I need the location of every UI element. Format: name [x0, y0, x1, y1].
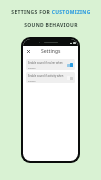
staticText: Settings [41, 48, 61, 55]
button[interactable]: Enable sound if no/zer when new activity [26, 59, 75, 70]
button[interactable]: Enable sound if activity when new activi… [26, 72, 75, 83]
button[interactable]: Close settings [25, 48, 32, 55]
staticText: Enable sound if activity when new activi… [28, 74, 65, 78]
staticText: SOUND BEHAVIOUR [24, 22, 78, 29]
button[interactable]: Toggle on [67, 63, 73, 67]
button[interactable]: Toggle off [67, 76, 73, 80]
staticText: SETTINGS FOR CUSTOMIZING [11, 9, 91, 16]
staticText: shown [28, 66, 36, 69]
staticText: Enable sound if no/zer when new activity [28, 61, 65, 65]
staticText: shown [28, 79, 36, 82]
